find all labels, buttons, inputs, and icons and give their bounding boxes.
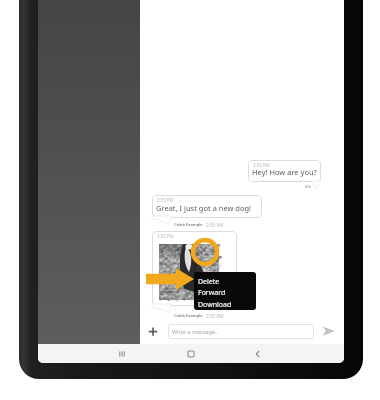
staticText: 2:33 PM: [157, 197, 174, 203]
button[interactable]: Download: [194, 299, 256, 310]
button[interactable]: Recents: [116, 348, 128, 360]
button[interactable]: Send: [322, 326, 335, 336]
staticText: Great, I just got a new dog!: [156, 203, 252, 213]
button[interactable]: Forward: [194, 287, 256, 298]
staticText: 2:33 PM: [206, 313, 224, 319]
staticText: Caleb Example: [174, 222, 203, 228]
button[interactable]: Delete: [194, 276, 256, 287]
staticText: 2:33 PM: [157, 233, 174, 239]
button[interactable]: Back: [252, 348, 264, 360]
staticText: Download: [198, 300, 232, 310]
button[interactable]: Write a message..: [168, 324, 314, 339]
button[interactable]: Add attachment: [146, 324, 160, 338]
button[interactable]: Home: [185, 348, 197, 360]
staticText: Write a message..: [172, 328, 218, 335]
staticText: Delete: [198, 277, 220, 287]
staticText: Hey! How are you?: [252, 167, 317, 177]
button[interactable]: 2:33 PM: [152, 195, 262, 218]
button[interactable]: 2:32 PM: [248, 160, 321, 182]
staticText: 2:32 PM: [253, 162, 270, 168]
button[interactable]: 2:33 PM: [152, 231, 237, 306]
staticText: 2:33 PM: [206, 222, 224, 228]
staticText: Me: [305, 184, 311, 189]
staticText: Caleb Example: [174, 313, 203, 319]
staticText: Forward: [198, 288, 226, 298]
